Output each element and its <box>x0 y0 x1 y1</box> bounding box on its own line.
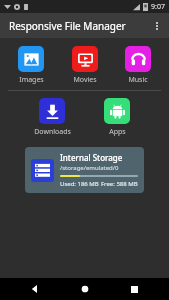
button[interactable]: Movies <box>63 44 107 87</box>
button[interactable]: Internal Storage <box>25 147 144 193</box>
staticText: Used: 186 MB <box>60 180 99 188</box>
staticText: Responsive File Manager <box>9 19 126 33</box>
button[interactable]: More options <box>145 14 169 38</box>
button[interactable]: Recent apps <box>119 278 149 300</box>
staticText: Apps <box>109 127 126 137</box>
button[interactable]: Back <box>20 278 50 300</box>
staticText: Free: 588 MB <box>101 180 138 188</box>
staticText: /storage/emulated/0 <box>60 164 119 172</box>
staticText: Internal Storage <box>60 152 123 163</box>
staticText: Downloads <box>34 127 71 137</box>
staticText: Images <box>19 75 44 85</box>
button[interactable]: Downloads <box>30 96 74 139</box>
staticText: Music <box>128 75 148 85</box>
button[interactable]: Music <box>116 44 160 87</box>
button[interactable]: Apps <box>95 96 139 139</box>
staticText: Movies <box>73 75 97 85</box>
button[interactable]: Home <box>70 278 100 300</box>
staticText: 9:07 <box>151 2 165 12</box>
button[interactable]: Images <box>9 44 53 87</box>
